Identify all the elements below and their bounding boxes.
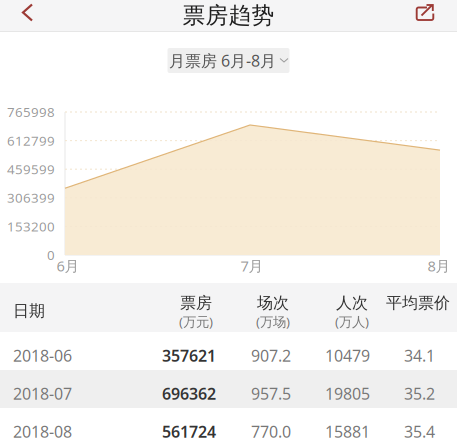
staticText: 957.5 — [251, 383, 291, 404]
staticText: 612799 — [7, 132, 55, 149]
staticText: (万人) — [335, 313, 369, 330]
staticText: (万元) — [179, 313, 213, 330]
staticText: 35.2 — [404, 383, 435, 404]
staticText: 907.2 — [251, 345, 291, 366]
staticText: 765998 — [7, 103, 55, 121]
staticText: 平均票价 — [386, 293, 450, 313]
button[interactable]: Share — [411, 3, 457, 28]
staticText: 场次 — [257, 293, 289, 313]
staticText: 561724 — [162, 421, 216, 442]
staticText: 2018-06 — [13, 345, 72, 366]
button[interactable]: 2018-07 — [0, 370, 457, 408]
staticText: 2018-08 — [13, 421, 72, 442]
staticText: 357621 — [162, 345, 216, 366]
staticText: 票房趋势 — [182, 2, 274, 29]
staticText: 696362 — [162, 383, 216, 404]
staticText: 10479 — [325, 345, 370, 366]
button[interactable]: 2018-06 — [0, 332, 457, 370]
staticText: 15881 — [325, 421, 370, 442]
staticText: (万场) — [256, 313, 290, 330]
staticText: 日期 — [13, 301, 45, 321]
staticText: 2018-07 — [13, 383, 72, 404]
staticText: 35.4 — [404, 421, 435, 442]
staticText: 34.1 — [404, 345, 435, 366]
staticText: 人次 — [336, 293, 368, 313]
staticText: 153200 — [7, 217, 55, 235]
staticText: 770.0 — [251, 421, 291, 442]
button[interactable]: 2018-08 — [0, 408, 457, 445]
staticText: 8月 — [427, 256, 450, 275]
staticText: 306399 — [7, 189, 55, 206]
staticText: 0 — [47, 246, 55, 264]
staticText: 6月 — [56, 256, 79, 275]
button[interactable]: 月票房 6月-8月 — [167, 48, 289, 73]
staticText: 月票房 6月-8月 — [169, 50, 276, 71]
staticText: 459599 — [7, 160, 55, 178]
staticText: 票房 — [180, 293, 212, 313]
staticText: 7月 — [240, 256, 263, 275]
staticText: 19805 — [325, 383, 370, 404]
button[interactable]: Back — [0, 0, 46, 31]
